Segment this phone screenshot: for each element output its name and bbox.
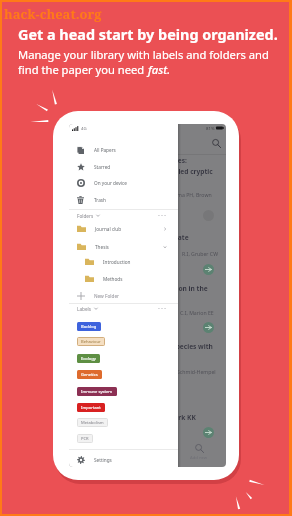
staticText: Introduction bbox=[103, 259, 131, 265]
staticText: Soil Bacteria Accumulate bbox=[107, 233, 189, 242]
staticText: Schmid-Hempel bbox=[177, 368, 216, 375]
button[interactable]: Behaviour bbox=[77, 337, 105, 346]
staticText: Behaviour bbox=[81, 339, 101, 345]
staticText: Immune system bbox=[81, 389, 113, 395]
button[interactable]: Immune system bbox=[77, 387, 117, 396]
staticText: Sharma PH, Brown bbox=[166, 191, 212, 198]
button[interactable]: PCR bbox=[77, 434, 93, 443]
staticText: Thesis bbox=[95, 244, 109, 250]
button[interactable]: Ecology bbox=[77, 354, 100, 363]
button[interactable]: Search bbox=[211, 138, 221, 148]
staticText: Trash bbox=[94, 197, 106, 203]
staticText: Distribution of invasive species with bbox=[94, 342, 213, 351]
staticText: On your device bbox=[94, 180, 127, 186]
button[interactable]: Journal club bbox=[69, 220, 178, 237]
button[interactable]: Open paper bbox=[203, 322, 214, 333]
button[interactable]: New Folder bbox=[69, 287, 178, 304]
staticText: Labels bbox=[77, 306, 92, 312]
button[interactable]: Open paper bbox=[203, 427, 214, 438]
button[interactable]: On your device bbox=[69, 174, 178, 191]
staticText: Manage your library with labels and fold… bbox=[18, 47, 269, 62]
staticText: PCR bbox=[81, 436, 89, 442]
staticText: Important bbox=[81, 405, 101, 411]
staticText: Backlog bbox=[81, 324, 97, 330]
staticText: Role of heterotrophic nitrification in t… bbox=[76, 284, 208, 293]
staticText: Get a head start by being organized. bbox=[18, 25, 278, 45]
staticText: R.I, Gruber CW bbox=[182, 250, 218, 257]
button[interactable]: Add new bbox=[185, 444, 213, 461]
staticText: find the paper you need bbox=[18, 62, 148, 77]
staticText: Seasonality in the park KK bbox=[110, 413, 196, 422]
button[interactable]: All Papers bbox=[69, 141, 178, 158]
staticText: Ecology bbox=[81, 356, 96, 362]
staticText: Methods bbox=[103, 276, 123, 282]
staticText: C.I, Marion EE bbox=[180, 309, 214, 316]
staticText: Record of sex-reversed concealed cryptic bbox=[79, 167, 213, 176]
staticText: fast. bbox=[148, 62, 171, 77]
button[interactable]: Introduction bbox=[69, 253, 178, 270]
staticText: New Folder bbox=[94, 293, 119, 299]
button[interactable]: Open paper bbox=[203, 264, 214, 275]
staticText: Add new bbox=[190, 455, 208, 461]
staticText: Settings bbox=[94, 457, 112, 463]
button[interactable]: Trash bbox=[69, 191, 178, 208]
button[interactable]: Labels bbox=[69, 302, 178, 315]
button[interactable]: Metabolism bbox=[77, 418, 108, 427]
staticText: Folders bbox=[77, 213, 94, 219]
button[interactable]: Settings bbox=[69, 451, 178, 467]
button[interactable]: Open paper bbox=[203, 210, 214, 221]
staticText: Journal club bbox=[95, 226, 122, 232]
button[interactable]: Genetics bbox=[77, 370, 102, 379]
button[interactable]: Folders bbox=[69, 209, 178, 222]
staticText: 81% bbox=[206, 125, 215, 131]
staticText: Starred bbox=[94, 164, 111, 170]
staticText: Hidden in plain sight: new species: bbox=[74, 156, 187, 165]
button[interactable]: Important bbox=[77, 403, 105, 412]
staticText: 4G bbox=[81, 125, 87, 131]
button[interactable]: Thesis bbox=[69, 238, 178, 255]
staticText: Genetics bbox=[81, 372, 98, 378]
button[interactable]: Backlog bbox=[77, 322, 101, 331]
button[interactable]: Methods bbox=[69, 270, 178, 287]
staticText: All Papers bbox=[94, 147, 116, 153]
staticText: hack-cheat.org bbox=[4, 5, 102, 23]
staticText: Metabolism bbox=[81, 420, 104, 426]
button[interactable]: Starred bbox=[69, 158, 178, 175]
